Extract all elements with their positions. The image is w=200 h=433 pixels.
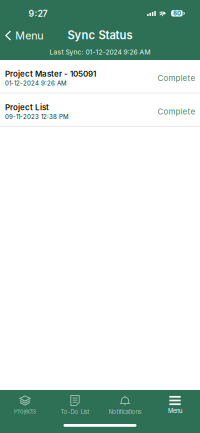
staticText: Complete <box>157 73 195 83</box>
staticText: 01-12-2024 9:26 AM <box>5 80 67 87</box>
staticText: Menu <box>15 29 43 42</box>
staticText: Project Master - 105091 <box>5 69 96 79</box>
button[interactable]: Projects <box>0 393 50 417</box>
button[interactable]: Project Master - 105091 <box>0 60 200 93</box>
staticText: Menu <box>168 407 182 414</box>
staticText: Complete <box>157 107 195 116</box>
staticText: Projects <box>14 408 36 415</box>
button[interactable]: Menu <box>150 393 200 417</box>
staticText: 80 <box>173 10 181 17</box>
staticText: To-Do List <box>60 408 89 415</box>
staticText: Notifications <box>108 408 141 415</box>
staticText: 09-11-2023 12:38 PM <box>5 113 69 120</box>
staticText: Last Sync: 01-12-2024 9:26 AM <box>49 48 150 56</box>
button[interactable]: Project List <box>0 93 200 127</box>
staticText: Sync Status <box>67 28 132 42</box>
button[interactable]: Menu <box>0 24 47 44</box>
button[interactable]: Notifications <box>100 393 150 417</box>
staticText: 9:27 <box>29 8 48 19</box>
button[interactable]: To-Do List <box>50 393 100 417</box>
staticText: Project List <box>5 102 49 112</box>
